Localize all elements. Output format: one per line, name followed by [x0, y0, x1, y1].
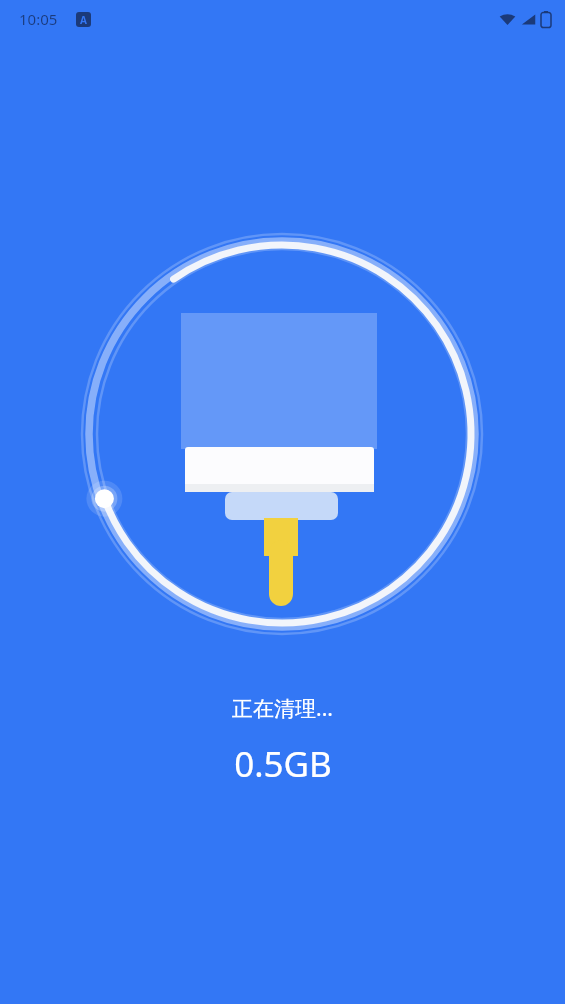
staticText: 正在清理... [232, 694, 333, 723]
other: Wi-Fi [499, 11, 516, 28]
staticText: A [80, 13, 87, 27]
other: Mobile signal [521, 12, 536, 27]
staticText: 10:05 [19, 9, 58, 29]
staticText: 0.5GB [234, 740, 332, 788]
other: Battery charging [541, 11, 551, 28]
